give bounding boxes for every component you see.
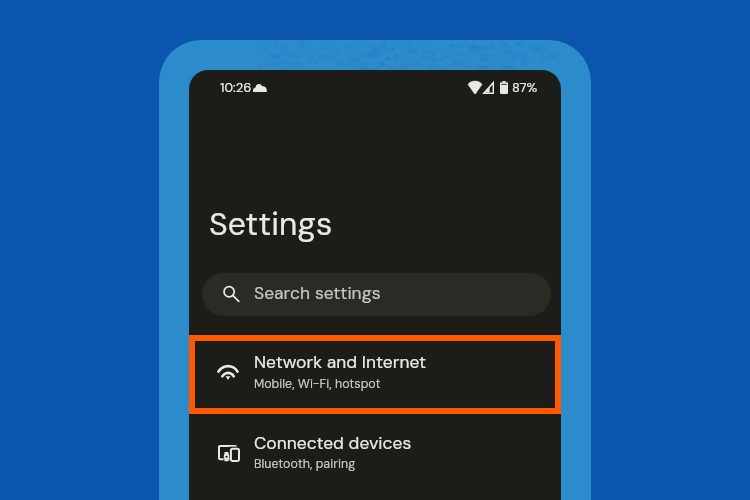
staticText: Bluetooth, pairing bbox=[254, 456, 356, 472]
staticText: Connected devices bbox=[254, 432, 412, 455]
staticText: Settings bbox=[209, 203, 333, 245]
button[interactable]: Search settings bbox=[202, 273, 551, 316]
staticText: Search settings bbox=[254, 282, 381, 305]
button[interactable] bbox=[195, 341, 555, 408]
staticText: 87% bbox=[512, 79, 538, 96]
button[interactable] bbox=[189, 414, 561, 500]
staticText: 10:26 bbox=[220, 79, 252, 96]
staticText: Mobile, Wi-Fi, hotspot bbox=[254, 376, 381, 392]
staticText: Network and Internet bbox=[254, 351, 427, 374]
other: Cloud bbox=[253, 83, 267, 92]
